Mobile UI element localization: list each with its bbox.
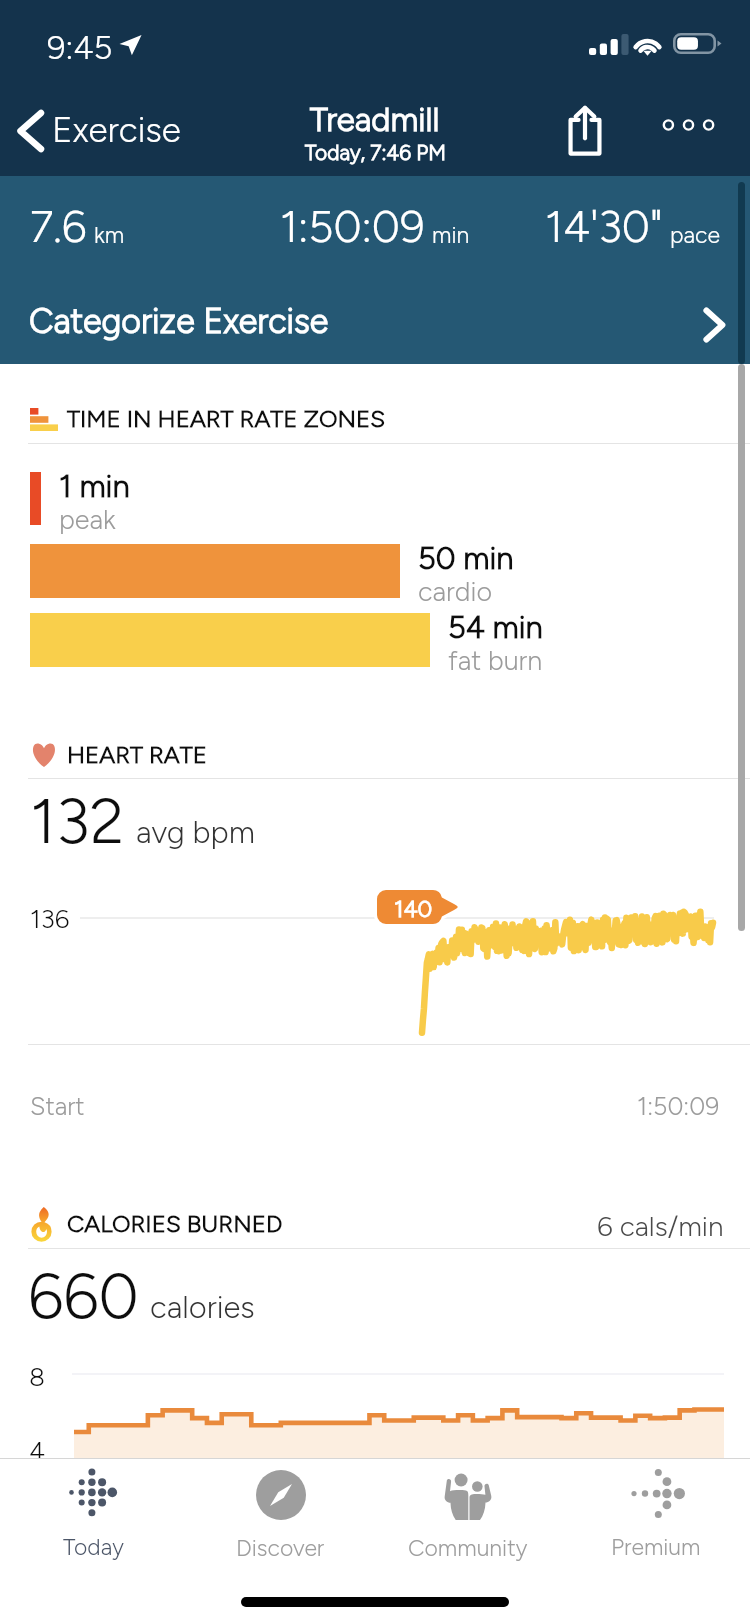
button[interactable]: Discover	[187, 1458, 374, 1570]
staticText: 50 min	[418, 540, 514, 577]
button[interactable]: Exercise	[4, 104, 193, 158]
staticText: 14'30"	[545, 200, 663, 253]
staticText: 1:50:09	[280, 200, 425, 253]
staticText: Start	[30, 1091, 85, 1121]
staticText: Today	[63, 1533, 124, 1561]
button[interactable]: Categorize Exercise	[0, 286, 750, 364]
staticText: Discover	[236, 1534, 325, 1562]
staticText: 660	[28, 1258, 139, 1334]
button[interactable]: Premium	[562, 1458, 750, 1570]
staticText: Today, 7:46 PM	[305, 140, 446, 165]
staticText: 1:50:09	[637, 1091, 720, 1121]
button[interactable]: Today	[0, 1458, 187, 1570]
staticText: 140	[394, 895, 433, 923]
staticText: TIME IN HEART RATE ZONES	[67, 404, 386, 433]
staticText: 8	[29, 1361, 45, 1392]
staticText: 7.6	[30, 200, 87, 253]
button[interactable]: Community	[374, 1458, 562, 1570]
staticText: 4	[29, 1435, 46, 1466]
staticText: cardio	[418, 575, 493, 607]
staticText: 132	[30, 783, 125, 859]
staticText: 136	[30, 903, 70, 934]
staticText: Exercise	[52, 109, 181, 151]
button[interactable]: Share	[558, 98, 612, 163]
staticText: 1 min	[59, 468, 130, 505]
staticText: calories	[150, 1289, 255, 1326]
staticText: peak	[59, 503, 116, 535]
staticText: fat burn	[448, 644, 543, 676]
staticText: Treadmill	[310, 100, 440, 140]
staticText: pace	[670, 221, 720, 249]
staticText: 9:45	[47, 28, 113, 68]
staticText: Premium	[611, 1533, 701, 1561]
staticText: Community	[408, 1534, 528, 1562]
staticText: 6 cals/min	[597, 1209, 724, 1243]
staticText: km	[94, 221, 125, 249]
staticText: 54 min	[448, 609, 543, 646]
staticText: avg bpm	[136, 814, 255, 851]
staticText: Categorize Exercise	[29, 301, 704, 342]
staticText: CALORIES BURNED	[67, 1209, 283, 1238]
staticText: HEART RATE	[67, 740, 207, 769]
button[interactable]: More options	[653, 105, 724, 145]
staticText: min	[432, 221, 470, 249]
